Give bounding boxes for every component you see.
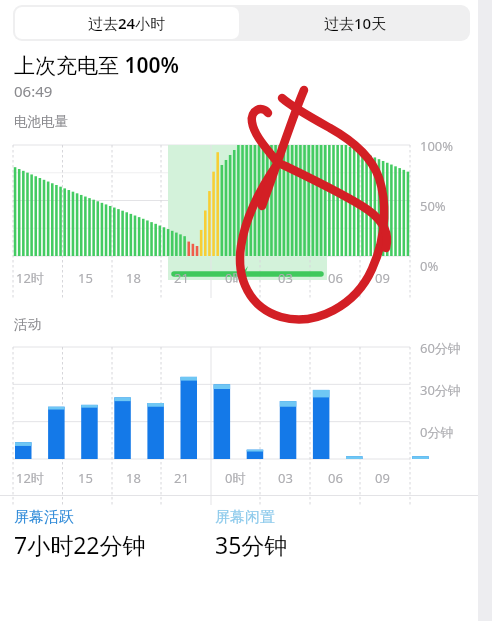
staticText: 35分钟 xyxy=(215,529,288,560)
staticText: 18 xyxy=(126,269,141,287)
staticText: 18 xyxy=(126,469,141,487)
button[interactable]: 100% xyxy=(0,136,492,304)
staticText: 0% xyxy=(420,257,439,275)
staticText: 过去10天 xyxy=(324,13,387,33)
staticText: 上次充电至 100% xyxy=(14,51,179,80)
staticText: 7小时22分钟 xyxy=(14,529,146,560)
button[interactable]: 过去10天 xyxy=(241,5,470,41)
other: Red handwritten annotation circling the … xyxy=(0,0,492,621)
staticText: 0分钟 xyxy=(420,423,454,441)
staticText: 过去24小时 xyxy=(88,13,166,33)
staticText: 21 xyxy=(174,269,189,287)
staticText: 0时 xyxy=(225,269,246,287)
staticText: 03 xyxy=(278,469,293,487)
button[interactable]: 屏幕活跃 xyxy=(14,508,215,560)
staticText: 屏幕闲置 xyxy=(215,508,275,527)
staticText: 0时 xyxy=(225,469,246,487)
staticText: 60分钟 xyxy=(420,339,461,357)
button[interactable]: 过去24小时 xyxy=(15,7,239,39)
staticText: 06 xyxy=(328,269,343,287)
staticText: 30分钟 xyxy=(420,381,461,399)
staticText: 09 xyxy=(375,269,390,287)
staticText: 06 xyxy=(328,469,343,487)
staticText: 03 xyxy=(278,269,293,287)
staticText: 电池电量 xyxy=(14,113,68,130)
staticText: 09 xyxy=(375,469,390,487)
staticText: 12时 xyxy=(16,269,44,287)
staticText: 屏幕活跃 xyxy=(14,508,74,527)
staticText: 50% xyxy=(420,197,446,215)
staticText: 15 xyxy=(78,469,93,487)
staticText: 活动 xyxy=(14,316,41,333)
staticText: 15 xyxy=(78,269,93,287)
staticText: 06:49 xyxy=(14,81,53,101)
staticText: 12时 xyxy=(16,469,44,487)
button[interactable]: 60分钟 xyxy=(0,339,492,489)
staticText: 21 xyxy=(174,469,189,487)
staticText: 100% xyxy=(420,137,454,155)
button[interactable]: 屏幕闲置 xyxy=(215,508,288,560)
